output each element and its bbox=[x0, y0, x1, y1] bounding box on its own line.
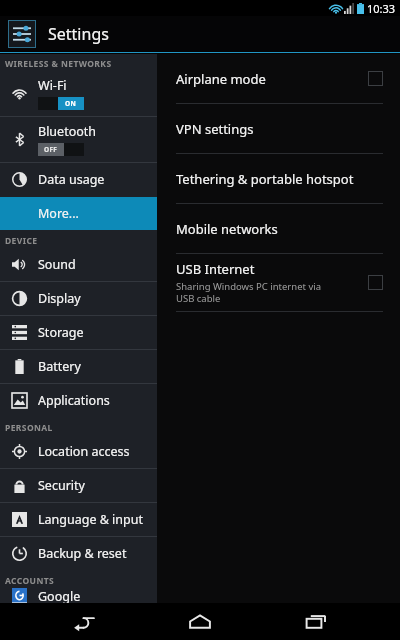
button[interactable]: Applications bbox=[0, 384, 157, 417]
button[interactable]: VPN settings bbox=[157, 104, 400, 154]
staticText: Mobile networks bbox=[176, 220, 278, 238]
staticText: More... bbox=[38, 205, 79, 222]
staticText: Language & input bbox=[38, 511, 143, 528]
staticText: Display bbox=[38, 290, 81, 307]
staticText: Sound bbox=[38, 256, 76, 273]
staticText: Airplane mode bbox=[176, 70, 266, 88]
staticText: Bluetooth bbox=[38, 123, 97, 140]
staticText: ACCOUNTS bbox=[5, 575, 55, 587]
staticText: Sharing Windows PC internet via USB cabl… bbox=[176, 280, 322, 305]
button[interactable]: Storage bbox=[0, 316, 157, 349]
staticText: Tethering & portable hotspot bbox=[176, 170, 354, 188]
button[interactable]: Tethering & portable hotspot bbox=[157, 154, 400, 204]
staticText: DEVICE bbox=[5, 235, 38, 247]
button[interactable]: Wi-Fi bbox=[0, 71, 157, 116]
button[interactable]: Battery bbox=[0, 350, 157, 383]
button[interactable]: Language & input bbox=[0, 503, 157, 536]
staticText: Battery bbox=[38, 358, 81, 375]
button[interactable]: Mobile networks bbox=[157, 204, 400, 254]
button[interactable]: Google bbox=[0, 588, 157, 603]
button[interactable]: Recent apps bbox=[284, 603, 348, 640]
staticText: Location access bbox=[38, 443, 130, 460]
staticText: Backup & reset bbox=[38, 545, 127, 562]
button[interactable]: Security bbox=[0, 469, 157, 502]
button[interactable]: USB Internet checkbox bbox=[368, 275, 383, 290]
button[interactable]: Data usage bbox=[0, 163, 157, 196]
staticText: Applications bbox=[38, 392, 110, 409]
button[interactable]: Sound bbox=[0, 248, 157, 281]
staticText: VPN settings bbox=[176, 120, 254, 138]
button[interactable]: More... bbox=[0, 197, 157, 230]
button[interactable]: Home bbox=[168, 603, 232, 640]
button[interactable]: Airplane mode checkbox bbox=[368, 71, 383, 86]
staticText: Wi-Fi bbox=[38, 77, 67, 94]
staticText: OFF bbox=[44, 145, 58, 154]
button[interactable]: Bluetooth bbox=[0, 117, 157, 162]
staticText: USB Internet bbox=[176, 260, 255, 278]
button[interactable]: Display bbox=[0, 282, 157, 315]
button[interactable]: Back bbox=[52, 603, 116, 640]
button[interactable]: Location access bbox=[0, 435, 157, 468]
button[interactable]: USB Internet bbox=[157, 254, 400, 312]
button[interactable]: Airplane mode bbox=[157, 54, 400, 104]
button[interactable]: Switch on bbox=[38, 97, 84, 110]
staticText: Security bbox=[38, 477, 85, 494]
staticText: Storage bbox=[38, 324, 84, 341]
staticText: Data usage bbox=[38, 171, 105, 188]
staticText: WIRELESS & NETWORKS bbox=[5, 58, 112, 70]
staticText: ON bbox=[65, 99, 77, 108]
staticText: 10:33 bbox=[367, 1, 396, 16]
button[interactable]: Switch off bbox=[38, 143, 84, 156]
staticText: PERSONAL bbox=[5, 422, 53, 434]
button[interactable]: Backup & reset bbox=[0, 537, 157, 570]
staticText: Settings bbox=[48, 23, 109, 45]
staticText: Google bbox=[38, 588, 81, 603]
button[interactable]: Settings bbox=[0, 16, 400, 52]
